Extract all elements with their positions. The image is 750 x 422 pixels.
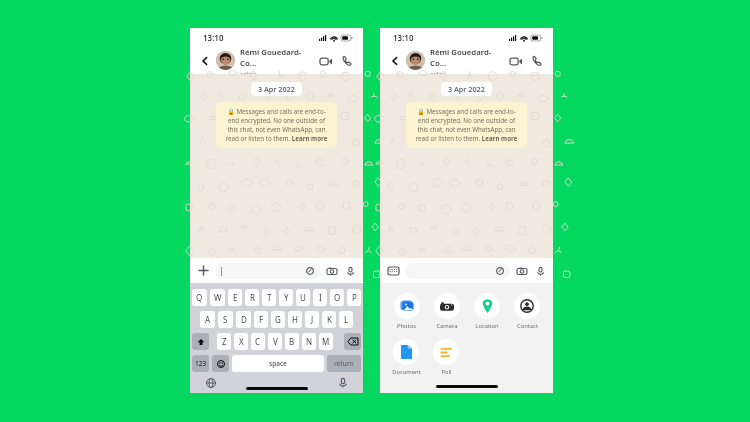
- staticText: Rémi Gouedard-Co…: [430, 47, 507, 69]
- button[interactable]: Poll: [426, 339, 466, 376]
- staticText: C: [255, 336, 261, 347]
- button[interactable]: B: [285, 333, 299, 350]
- staticText: Poll: [441, 368, 452, 376]
- staticText: online: [430, 70, 447, 74]
- staticText: D: [241, 314, 247, 325]
- button[interactable]: M: [319, 333, 333, 350]
- staticText: Location: [475, 322, 499, 330]
- button[interactable]: Photos: [386, 293, 427, 330]
- button[interactable]: S: [218, 311, 233, 328]
- staticText: X: [239, 336, 244, 347]
- staticText: S: [223, 314, 228, 325]
- button[interactable]: T: [262, 289, 276, 306]
- staticText: Y: [284, 292, 289, 303]
- staticText: L: [344, 314, 349, 325]
- staticText: U: [300, 292, 306, 303]
- button[interactable]: Voice message: [533, 264, 547, 278]
- staticText: M: [322, 336, 330, 347]
- staticText: Contact: [517, 322, 538, 330]
- button[interactable]: Camera: [515, 264, 529, 278]
- staticText: 13:10: [393, 32, 414, 43]
- button[interactable]: V: [268, 333, 282, 350]
- button[interactable]: Y: [279, 289, 293, 306]
- button[interactable]: [215, 263, 320, 279]
- button[interactable]: Change keyboard: [204, 376, 217, 389]
- staticText: 3 Apr 2022: [448, 84, 485, 94]
- staticText: V: [273, 336, 278, 347]
- staticText: Document: [392, 368, 421, 376]
- button[interactable]: Back: [387, 53, 403, 69]
- button[interactable]: O: [330, 289, 344, 306]
- staticText: Q: [196, 292, 203, 303]
- staticText: Rémi Gouedard-Co…: [240, 47, 317, 69]
- button[interactable]: Keyboard: [386, 263, 401, 278]
- staticText: return: [334, 359, 354, 368]
- staticText: 🔒 Messages and calls are end-to-end encr…: [413, 107, 520, 143]
- button[interactable]: Dictation: [336, 376, 349, 389]
- staticText: R: [250, 292, 255, 303]
- staticText: 13:10: [203, 32, 224, 43]
- button[interactable]: Q: [192, 289, 207, 306]
- staticText: Camera: [436, 322, 458, 330]
- button[interactable]: R: [245, 289, 259, 306]
- button[interactable]: L: [339, 311, 353, 328]
- staticText: 123: [195, 359, 207, 368]
- button[interactable]: Rémi Gouedard-Co…: [216, 47, 317, 74]
- button[interactable]: D: [236, 311, 251, 328]
- button[interactable]: Video call: [507, 52, 525, 70]
- button[interactable]: Video call: [317, 52, 335, 70]
- button[interactable]: Contact: [507, 293, 547, 330]
- staticText: 🔒 Messages and calls are end-to-end encr…: [223, 107, 330, 143]
- staticText: K: [327, 314, 332, 325]
- staticText: Z: [222, 336, 227, 347]
- button[interactable]: Location: [467, 293, 507, 330]
- staticText: F: [259, 314, 264, 325]
- button[interactable]: G: [271, 311, 285, 328]
- staticText: P: [352, 292, 357, 303]
- button[interactable]: E: [228, 289, 242, 306]
- button[interactable]: P: [347, 289, 361, 306]
- button[interactable]: I: [313, 289, 327, 306]
- button[interactable]: return: [327, 355, 361, 372]
- staticText: W: [214, 292, 222, 303]
- button[interactable]: Backspace: [344, 333, 361, 350]
- button[interactable]: Attach: [196, 263, 211, 278]
- staticText: T: [267, 292, 272, 303]
- staticText: 3 Apr 2022: [258, 84, 295, 94]
- button[interactable]: Emoji: [212, 355, 229, 372]
- staticText: J: [311, 314, 314, 325]
- button[interactable]: N: [302, 333, 316, 350]
- button[interactable]: Back: [197, 53, 213, 69]
- button[interactable]: Voice call: [528, 52, 546, 70]
- staticText: Photos: [397, 322, 416, 330]
- button[interactable]: Numbers: [192, 355, 209, 372]
- staticText: O: [334, 292, 341, 303]
- staticText: I: [319, 292, 322, 303]
- staticText: E: [233, 292, 238, 303]
- button[interactable]: K: [322, 311, 336, 328]
- staticText: online: [240, 70, 257, 74]
- button[interactable]: F: [254, 311, 268, 328]
- button[interactable]: A: [200, 311, 215, 328]
- button[interactable]: Document: [386, 339, 426, 376]
- button[interactable]: C: [251, 333, 265, 350]
- button[interactable]: X: [234, 333, 248, 350]
- staticText: H: [292, 314, 298, 325]
- button[interactable]: Z: [217, 333, 231, 350]
- button[interactable]: W: [210, 289, 225, 306]
- button[interactable]: space: [232, 355, 324, 372]
- button[interactable]: Voice call: [338, 52, 356, 70]
- button[interactable]: Voice message: [343, 264, 357, 278]
- button[interactable]: Rémi Gouedard-Co…: [406, 47, 507, 74]
- staticText: G: [275, 314, 281, 325]
- button[interactable]: J: [305, 311, 319, 328]
- button[interactable]: [405, 263, 510, 279]
- button[interactable]: Camera: [427, 293, 467, 330]
- staticText: B: [289, 336, 295, 347]
- staticText: A: [205, 314, 211, 325]
- button[interactable]: H: [288, 311, 302, 328]
- button[interactable]: U: [296, 289, 310, 306]
- button[interactable]: Shift: [192, 333, 209, 350]
- staticText: N: [306, 336, 313, 347]
- button[interactable]: Camera: [325, 264, 339, 278]
